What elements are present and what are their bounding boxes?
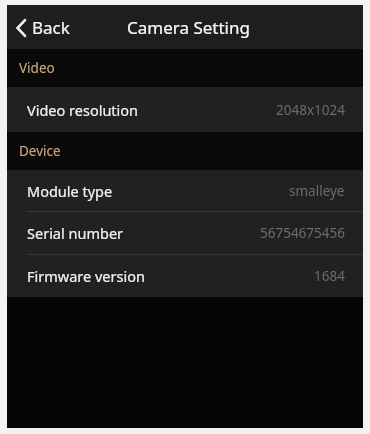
staticText: 1684 xyxy=(314,267,345,285)
staticText: Back xyxy=(32,16,70,39)
button[interactable]: Module type xyxy=(7,170,363,211)
staticText: Video xyxy=(19,59,55,77)
staticText: 56754675456 xyxy=(260,224,345,242)
staticText: smalleye xyxy=(289,182,345,200)
button[interactable]: Serial number xyxy=(7,212,363,254)
button[interactable]: Firmware version xyxy=(7,255,363,297)
staticText: Serial number xyxy=(27,223,124,243)
staticText: Video resolution xyxy=(27,100,139,120)
button[interactable]: Video resolution xyxy=(7,87,363,132)
staticText: Camera Setting xyxy=(127,16,250,39)
button[interactable]: Back xyxy=(7,8,84,47)
staticText: 2048x1024 xyxy=(276,101,345,119)
staticText: Firmware version xyxy=(27,266,145,286)
staticText: Device xyxy=(19,142,61,160)
staticText: Module type xyxy=(27,181,113,201)
